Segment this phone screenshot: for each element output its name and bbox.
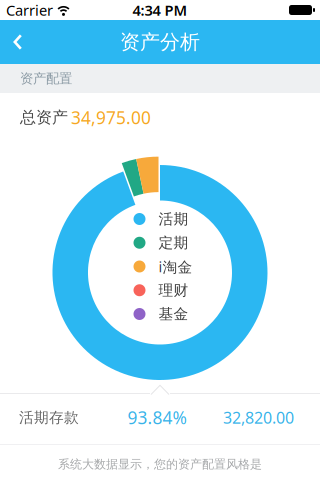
staticText: 资产分析 <box>120 30 200 54</box>
staticText: Carrier <box>6 0 53 20</box>
staticText: 4:34 PM <box>132 0 187 20</box>
staticText: 32,820.00 <box>223 407 294 428</box>
staticText: 总资产 <box>20 108 68 127</box>
staticText: 93.84% <box>127 406 186 429</box>
staticText: 34,975.00 <box>71 106 151 129</box>
staticText: 资产配置 <box>20 70 72 87</box>
staticText: i淘金 <box>158 257 192 276</box>
staticText: 理财 <box>158 281 188 299</box>
staticText: 活期 <box>158 210 188 228</box>
staticText: 系统大数据显示，您的资产配置风格是 <box>58 457 262 472</box>
staticText: 活期存款 <box>19 408 79 426</box>
staticText: 基金 <box>158 305 188 323</box>
button[interactable]: 活期存款 <box>0 406 320 428</box>
button[interactable]: Back <box>4 28 32 55</box>
staticText: 定期 <box>158 234 188 252</box>
